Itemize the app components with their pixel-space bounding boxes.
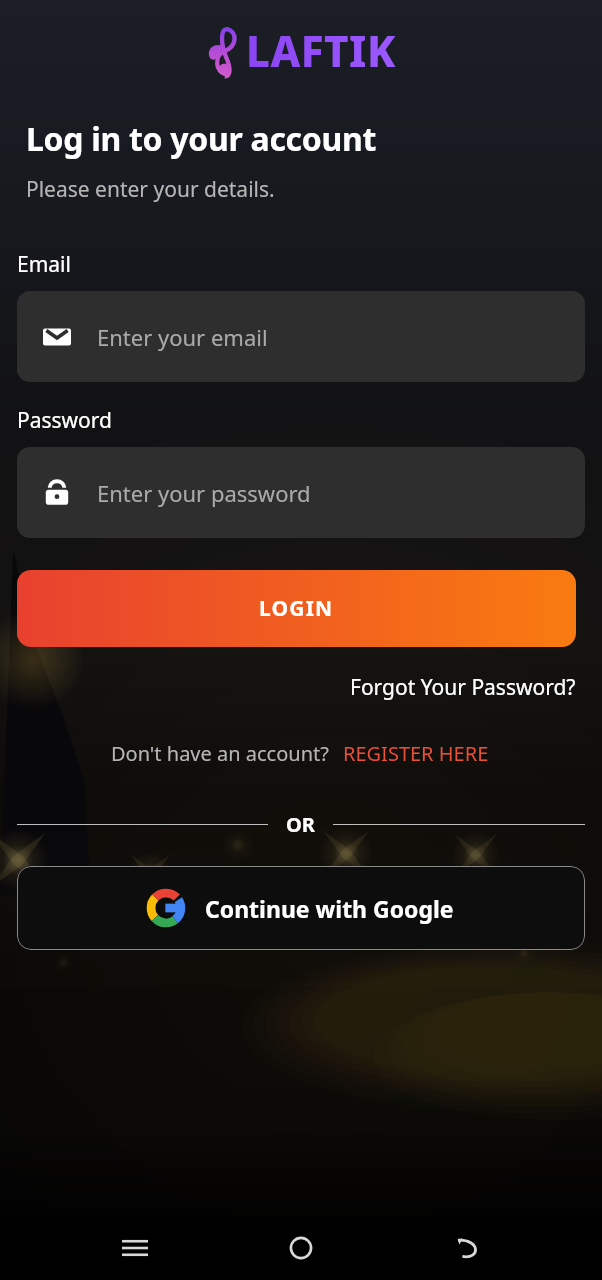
button[interactable]: Home <box>269 1216 333 1280</box>
button[interactable]: Recents <box>103 1216 167 1280</box>
button[interactable]: Continue with Google <box>17 866 585 950</box>
staticText: Forgot Your Password? <box>350 673 576 702</box>
button[interactable]: Enter your email <box>17 291 585 382</box>
staticText: Password <box>17 406 112 435</box>
staticText: Continue with Google <box>205 893 454 924</box>
staticText: OR <box>286 811 315 838</box>
button[interactable]: Enter your password <box>17 447 585 538</box>
staticText: Log in to your account <box>26 117 377 161</box>
staticText: LAFTIK <box>246 22 396 79</box>
button[interactable]: REGISTER HERE <box>341 738 491 769</box>
staticText: Enter your email <box>97 322 268 352</box>
button[interactable]: Back <box>436 1216 500 1280</box>
staticText: REGISTER HERE <box>343 740 489 767</box>
staticText: Email <box>17 250 71 279</box>
staticText: LOGIN <box>259 594 334 623</box>
button[interactable]: Forgot Your Password? <box>346 669 580 706</box>
staticText: Don't have an account? <box>111 740 329 767</box>
button[interactable]: LOGIN <box>17 570 576 647</box>
staticText: Please enter your details. <box>26 175 275 204</box>
staticText: Enter your password <box>97 478 311 508</box>
